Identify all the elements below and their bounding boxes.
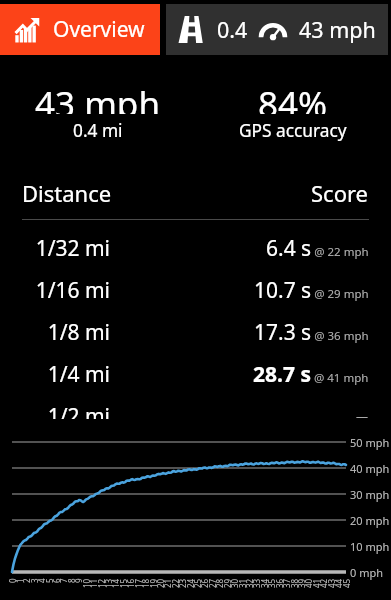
staticText: 28.7 s @ 41 mph	[253, 360, 369, 389]
staticText: 0.4 mi	[73, 119, 123, 143]
button[interactable]: 1/4 mi	[22, 353, 369, 395]
staticText: Distance	[22, 178, 112, 207]
staticText: 6.4 s @ 22 mph	[266, 234, 369, 263]
staticText: 1/32 mi	[22, 234, 110, 263]
button[interactable]: 1/16 mi	[22, 269, 369, 311]
staticText: —	[356, 408, 369, 419]
staticText: GPS accuracy	[239, 119, 347, 143]
staticText: 1/2 mi	[22, 402, 110, 419]
button[interactable]: 1/8 mi	[22, 311, 369, 353]
button[interactable]: 1/32 mi	[22, 227, 369, 269]
staticText: 10.7 s @ 29 mph	[254, 276, 369, 305]
button[interactable]: 1/2 mi	[22, 395, 369, 419]
staticText: 0.4	[217, 15, 248, 44]
staticText: 43 mph	[35, 80, 161, 114]
staticText: 1/8 mi	[22, 318, 110, 347]
other: Speed	[258, 15, 288, 45]
staticText: 1/4 mi	[22, 360, 110, 389]
staticText: 17.3 s @ 36 mph	[254, 318, 369, 347]
staticText: Score	[311, 178, 369, 207]
button[interactable]: Overview	[0, 4, 160, 55]
staticText: 84%	[258, 80, 328, 114]
staticText: 43 mph	[299, 15, 376, 44]
staticText: 1/16 mi	[22, 276, 110, 305]
other: Distance	[178, 16, 203, 43]
button[interactable]: Distance	[166, 4, 388, 55]
staticText: Overview	[53, 15, 145, 44]
